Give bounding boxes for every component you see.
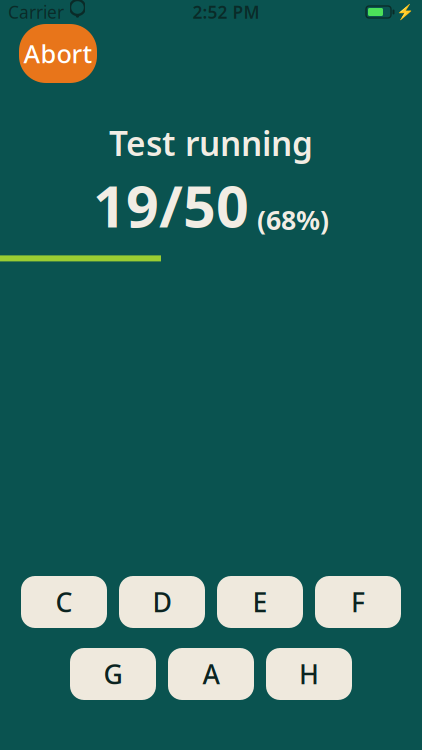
staticText: C xyxy=(55,584,72,620)
button[interactable]: H xyxy=(266,648,352,700)
button[interactable]: D xyxy=(119,576,205,628)
staticText: F xyxy=(351,584,365,620)
button[interactable]: Abort xyxy=(19,24,97,83)
staticText: (68%) xyxy=(257,202,329,237)
staticText: Abort xyxy=(23,37,92,70)
button[interactable]: E xyxy=(217,576,303,628)
button[interactable]: G xyxy=(70,648,156,700)
staticText: Test running xyxy=(109,121,313,165)
staticText: H xyxy=(299,656,319,692)
staticText: ⚡ xyxy=(396,4,414,20)
staticText: 2:52 PM xyxy=(192,0,259,23)
button[interactable]: C xyxy=(21,576,107,628)
staticText: A xyxy=(202,656,219,692)
button[interactable]: A xyxy=(168,648,254,700)
staticText: 19/50 xyxy=(93,167,249,243)
staticText: D xyxy=(152,584,171,620)
staticText: E xyxy=(252,584,267,620)
staticText: G xyxy=(103,656,122,692)
button[interactable]: F xyxy=(315,576,401,628)
staticText: Carrier xyxy=(8,0,64,23)
